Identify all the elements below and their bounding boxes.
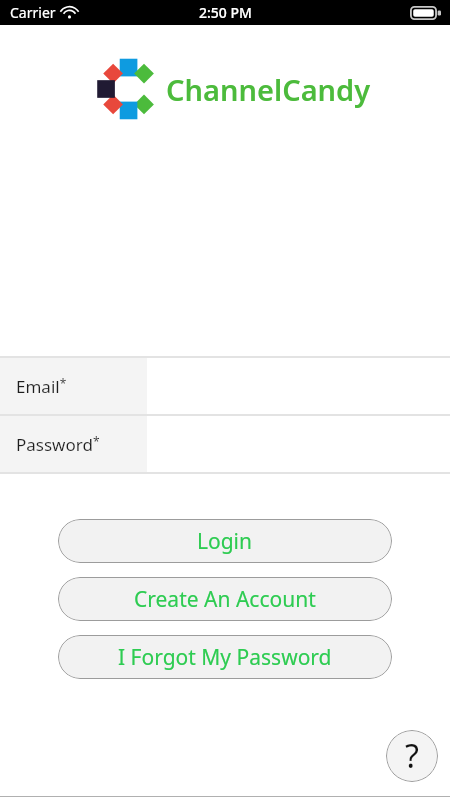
staticText: Carrier	[10, 3, 56, 22]
button[interactable]: Login	[58, 519, 392, 563]
staticText: ?	[405, 734, 419, 778]
staticText: Login	[197, 527, 253, 556]
staticText: Email*	[16, 375, 67, 398]
button[interactable]: I Forgot My Password	[58, 635, 392, 679]
button[interactable]: Email*	[0, 358, 450, 414]
staticText: Password*	[16, 433, 100, 456]
staticText: 2:50 PM	[199, 3, 252, 22]
staticText: Create An Account	[134, 585, 316, 614]
button[interactable]: Create An Account	[58, 577, 392, 621]
button[interactable]: Password*	[0, 416, 450, 472]
button[interactable]: Help	[386, 730, 438, 782]
staticText: ChannelCandy	[166, 70, 371, 109]
staticText: I Forgot My Password	[118, 643, 332, 672]
